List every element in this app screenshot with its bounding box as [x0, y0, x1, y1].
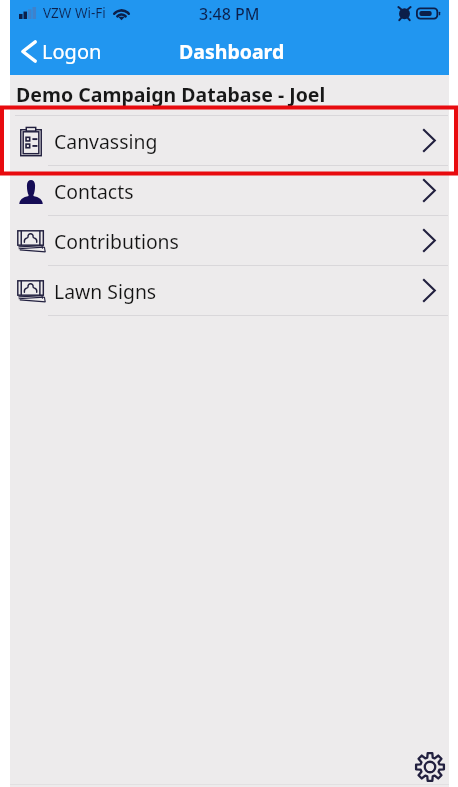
staticText: Dashboard [179, 38, 285, 65]
button[interactable]: Logon [21, 38, 102, 65]
button[interactable]: Contributions [10, 216, 449, 265]
button[interactable]: Lawn Signs [10, 266, 449, 315]
button[interactable]: Settings [412, 749, 448, 785]
staticText: Canvassing [54, 128, 158, 154]
staticText: Lawn Signs [54, 278, 157, 304]
staticText: Contacts [54, 178, 134, 204]
staticText: Contributions [54, 228, 179, 254]
button[interactable]: Contacts [10, 166, 449, 215]
staticText: Demo Campaign Database - Joel [16, 81, 326, 108]
staticText: VZW Wi-Fi [43, 4, 106, 22]
staticText: 3:48 PM [199, 3, 260, 25]
button[interactable]: Canvassing [10, 116, 449, 165]
staticText: Logon [42, 38, 102, 65]
